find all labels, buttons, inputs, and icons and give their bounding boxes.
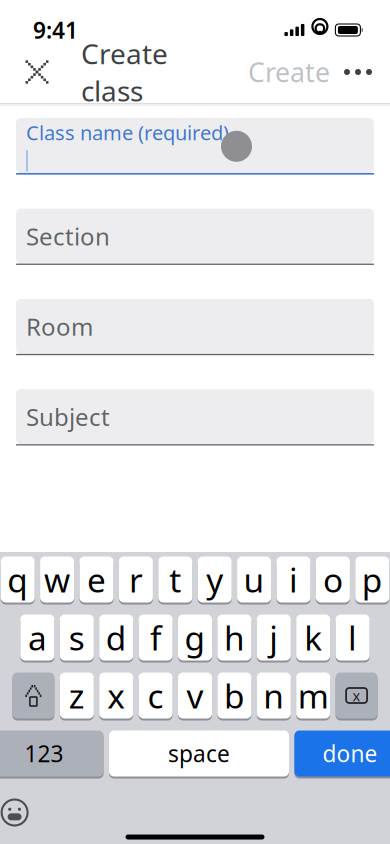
staticText: Room: [26, 310, 93, 342]
staticText: x: [107, 673, 125, 718]
button[interactable]: f: [139, 614, 173, 662]
staticText: e: [87, 557, 106, 602]
button[interactable]: y: [198, 556, 232, 604]
staticText: l: [348, 615, 357, 660]
button[interactable]: Room: [16, 299, 374, 355]
staticText: h: [224, 615, 245, 660]
button[interactable]: a: [20, 614, 54, 662]
staticText: m: [298, 673, 329, 718]
button[interactable]: o: [316, 556, 350, 604]
staticText: f: [150, 615, 161, 660]
button[interactable]: h: [217, 614, 251, 662]
button[interactable]: b: [217, 672, 251, 720]
staticText: u: [244, 557, 265, 602]
button[interactable]: More options: [336, 50, 380, 94]
button[interactable]: r: [119, 556, 153, 604]
button[interactable]: done: [294, 730, 390, 778]
button[interactable]: Delete: [336, 672, 378, 720]
button[interactable]: m: [296, 672, 330, 720]
button[interactable]: Subject: [16, 389, 374, 445]
button[interactable]: Section: [16, 209, 374, 265]
staticText: done: [322, 738, 377, 768]
button[interactable]: i: [276, 556, 310, 604]
button[interactable]: k: [296, 614, 330, 662]
button[interactable]: Create: [242, 50, 336, 94]
staticText: x: [353, 686, 361, 705]
button[interactable]: Emoji keyboard: [0, 790, 37, 834]
staticText: 9:41: [33, 15, 78, 45]
staticText: n: [263, 673, 284, 718]
staticText: space: [168, 738, 230, 768]
staticText: i: [289, 557, 298, 602]
button[interactable]: Close: [15, 50, 59, 94]
button[interactable]: s: [60, 614, 94, 662]
button[interactable]: c: [139, 672, 173, 720]
staticText: d: [106, 615, 127, 660]
staticText: k: [304, 615, 322, 660]
button[interactable]: q: [1, 556, 35, 604]
button[interactable]: d: [99, 614, 133, 662]
button[interactable]: 123: [0, 730, 104, 778]
staticText: c: [148, 673, 164, 718]
button[interactable]: x: [99, 672, 133, 720]
staticText: p: [362, 557, 383, 602]
staticText: Class name (required): [26, 119, 229, 146]
staticText: Create class: [81, 35, 168, 109]
button[interactable]: Shift: [12, 672, 54, 720]
staticText: w: [44, 557, 70, 602]
staticText: j: [269, 615, 278, 660]
button[interactable]: v: [178, 672, 212, 720]
staticText: b: [224, 673, 245, 718]
staticText: r: [129, 557, 143, 602]
staticText: Section: [26, 220, 110, 252]
button[interactable]: p: [355, 556, 389, 604]
button[interactable]: t: [158, 556, 192, 604]
staticText: q: [7, 557, 28, 602]
staticText: 123: [25, 738, 64, 768]
staticText: y: [206, 557, 223, 602]
button[interactable]: g: [178, 614, 212, 662]
button[interactable]: j: [257, 614, 291, 662]
staticText: s: [69, 615, 85, 660]
staticText: a: [28, 615, 47, 660]
button[interactable]: l: [336, 614, 370, 662]
staticText: z: [69, 673, 85, 718]
button[interactable]: u: [237, 556, 271, 604]
button[interactable]: n: [257, 672, 291, 720]
button[interactable]: Class name (required): [16, 118, 374, 175]
button[interactable]: z: [60, 672, 94, 720]
button[interactable]: w: [40, 556, 74, 604]
button[interactable]: e: [79, 556, 113, 604]
staticText: g: [184, 615, 205, 660]
staticText: v: [186, 673, 203, 718]
staticText: t: [169, 557, 181, 602]
staticText: o: [323, 557, 343, 602]
staticText: Subject: [26, 401, 110, 433]
staticText: Create: [248, 54, 330, 90]
button[interactable]: space: [109, 730, 289, 778]
